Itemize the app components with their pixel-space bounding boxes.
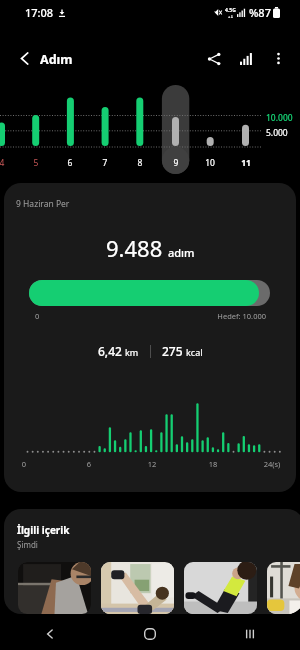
button[interactable]: Recent apps xyxy=(200,618,300,650)
staticText: 10.000 xyxy=(266,112,293,124)
button[interactable] xyxy=(101,562,174,614)
staticText: kcal xyxy=(186,346,203,358)
button[interactable]: 9 Haziran Per xyxy=(4,183,296,492)
button[interactable]: Share xyxy=(196,41,231,76)
staticText: 18 xyxy=(193,459,233,469)
staticText: 7 xyxy=(100,157,110,169)
staticText: 12 xyxy=(132,459,172,469)
button[interactable]: More options xyxy=(261,41,295,75)
button[interactable] xyxy=(18,562,91,614)
button[interactable] xyxy=(267,562,300,614)
staticText: Adım xyxy=(40,51,73,68)
staticText: 275 xyxy=(162,343,183,359)
staticText: 6,42 xyxy=(98,343,122,359)
staticText: %87 xyxy=(249,5,271,20)
staticText: Hedef: 10.000 xyxy=(164,311,266,321)
staticText: 6 xyxy=(69,459,109,469)
staticText: 9.488 xyxy=(106,233,163,263)
staticText: 5.000 xyxy=(266,127,288,139)
staticText: 17:08 xyxy=(25,5,54,20)
staticText: 11 xyxy=(238,157,254,169)
staticText: km xyxy=(125,346,139,358)
button[interactable] xyxy=(184,562,257,614)
button[interactable]: Home xyxy=(100,618,200,650)
staticText: 10 xyxy=(202,157,218,169)
staticText: 8 xyxy=(135,157,145,169)
staticText: 9 Haziran Per xyxy=(16,198,70,210)
staticText: İlgili içerik xyxy=(17,523,70,537)
staticText: 5 xyxy=(31,157,41,169)
staticText: 9 xyxy=(171,157,181,169)
staticText: 24(s) xyxy=(252,459,292,469)
staticText: 4.5G xyxy=(225,7,236,14)
button[interactable]: Back xyxy=(6,40,42,76)
button[interactable]: Statistics xyxy=(229,41,264,76)
staticText: 0 xyxy=(4,459,44,469)
staticText: 4 xyxy=(0,157,7,169)
staticText: 6 xyxy=(65,157,75,169)
staticText: Şimdi xyxy=(17,539,38,550)
staticText: 0 xyxy=(35,311,40,321)
button[interactable]: Back xyxy=(0,618,100,650)
staticText: adım xyxy=(168,245,195,260)
staticText: +↓ xyxy=(228,14,234,19)
